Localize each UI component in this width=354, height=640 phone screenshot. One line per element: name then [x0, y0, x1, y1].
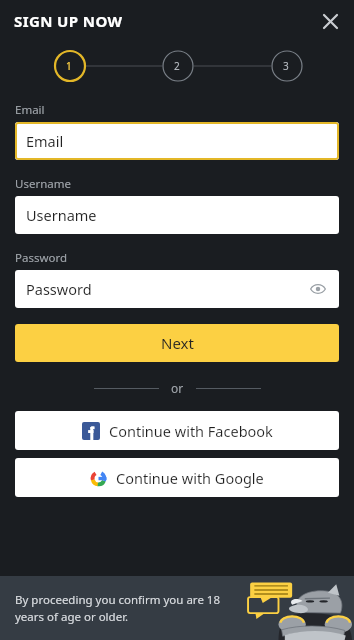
- button[interactable]: Continue with Facebook: [15, 411, 339, 450]
- button[interactable]: Email: [15, 122, 339, 160]
- staticText: or: [171, 380, 184, 396]
- staticText: SIGN UP NOW: [14, 11, 123, 31]
- staticText: Email: [15, 102, 45, 118]
- staticText: By proceeding you confirm you are 18 yea…: [15, 592, 221, 625]
- staticText: Continue with Google: [116, 468, 264, 488]
- staticText: 1: [66, 59, 72, 73]
- staticText: Continue with Facebook: [109, 421, 273, 441]
- button[interactable]: Password: [15, 270, 339, 308]
- button[interactable]: Continue with Google: [15, 458, 339, 497]
- staticText: 3: [283, 59, 289, 73]
- staticText: Password: [15, 250, 68, 266]
- staticText: Email: [26, 131, 64, 151]
- staticText: Password: [26, 279, 92, 299]
- button[interactable]: Next: [15, 324, 339, 362]
- staticText: Username: [15, 176, 71, 192]
- button[interactable]: Username: [15, 196, 339, 234]
- staticText: Next: [161, 333, 194, 353]
- button[interactable]: Show password: [307, 278, 329, 300]
- staticText: Username: [26, 205, 97, 225]
- button[interactable]: Close: [316, 7, 344, 35]
- staticText: 2: [174, 59, 180, 73]
